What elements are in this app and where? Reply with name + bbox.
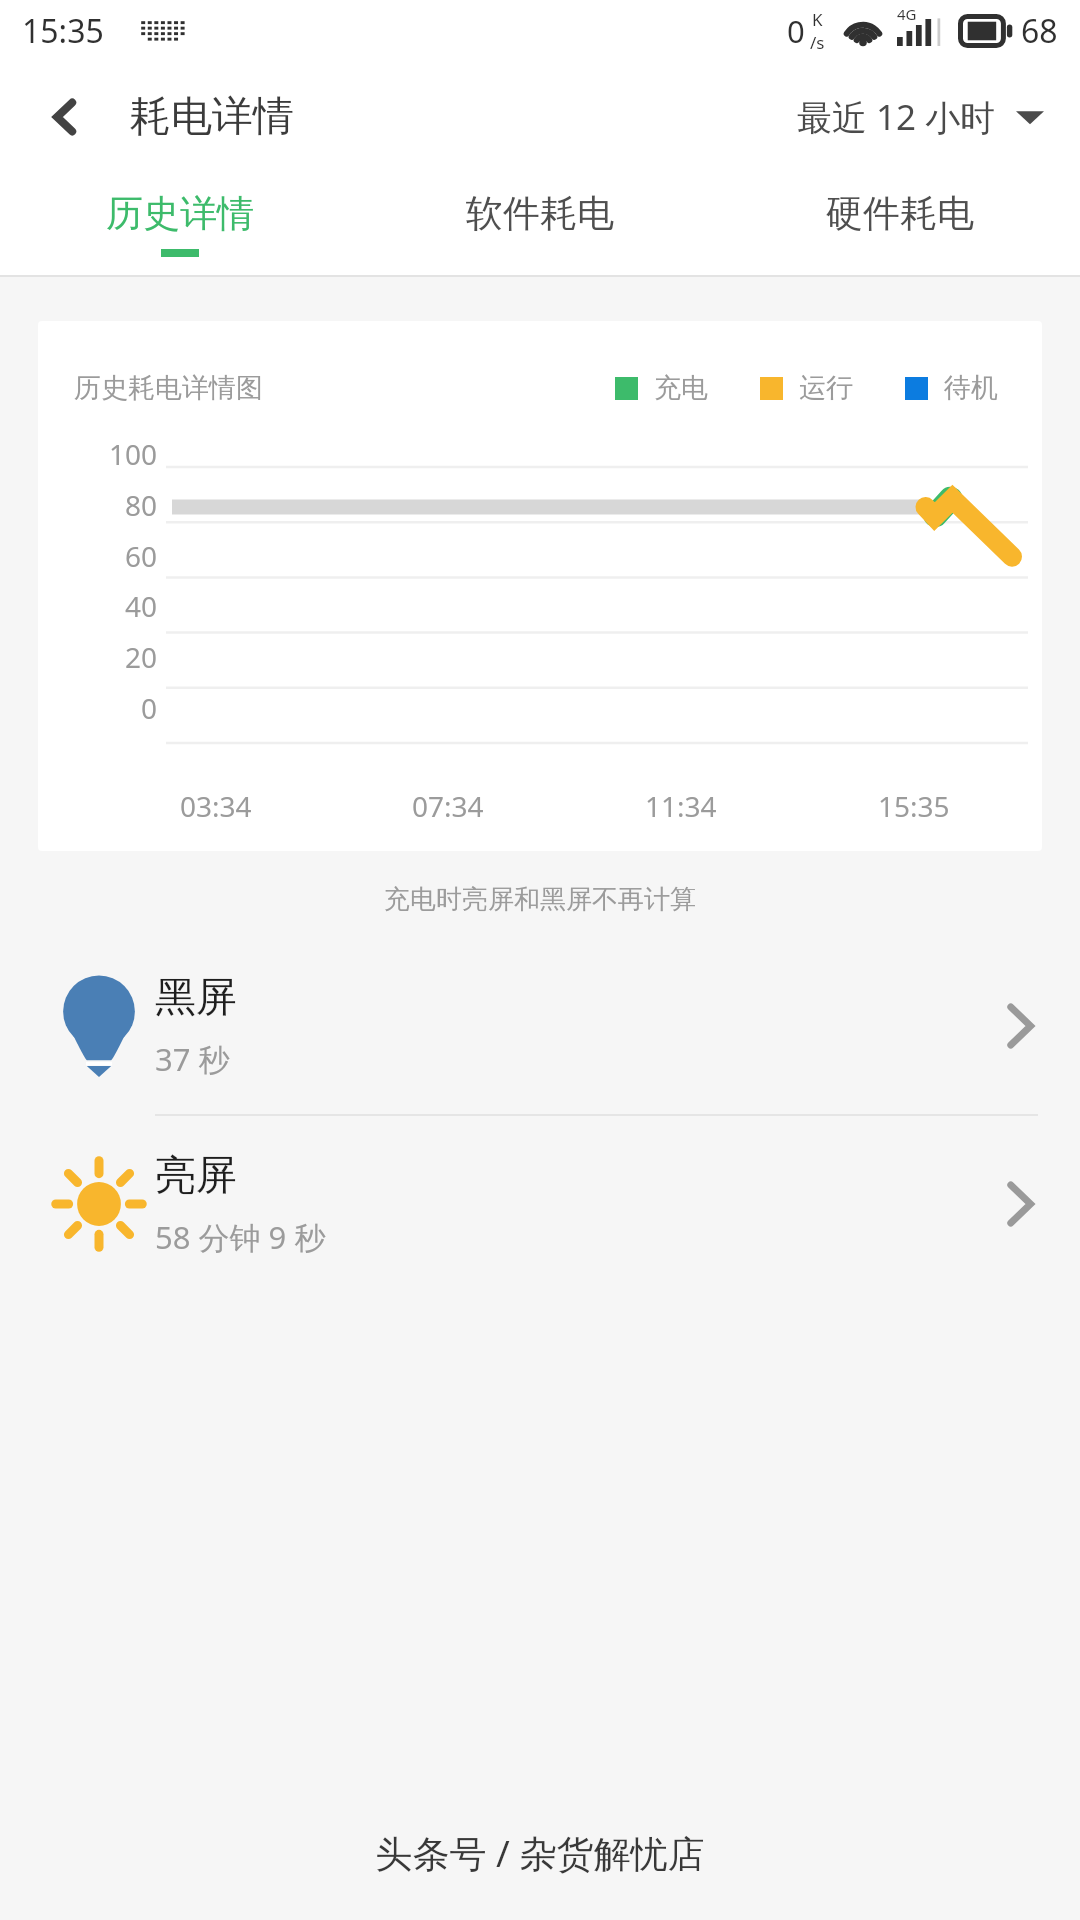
staticText: 03:34 — [180, 787, 252, 825]
staticText: 58 分钟 9 秒 — [155, 1216, 326, 1258]
staticText: 历史详情 — [106, 190, 254, 237]
staticText: 最近 12 小时 — [797, 93, 996, 141]
staticText: 07:34 — [412, 787, 484, 825]
button[interactable]: 亮屏 — [0, 1116, 1080, 1292]
staticText: 4G — [897, 4, 917, 24]
staticText: 80 — [125, 486, 158, 524]
staticText: 37 秒 — [155, 1038, 230, 1080]
staticText: 15:35 — [22, 9, 104, 53]
staticText: /s — [810, 31, 825, 54]
staticText: K — [812, 8, 823, 31]
staticText: 充电时亮屏和黑屏不再计算 — [0, 883, 1080, 916]
staticText: 黑屏 — [155, 972, 237, 1024]
staticText: 软件耗电 — [466, 190, 614, 237]
button[interactable]: 最近 12 小时 — [797, 83, 1044, 151]
button[interactable]: 黑屏 — [0, 938, 1080, 1114]
staticText: 耗电详情 — [130, 91, 294, 143]
button[interactable]: Back — [34, 86, 96, 148]
staticText: 0 — [787, 10, 805, 52]
staticText: 待机 — [944, 371, 998, 405]
staticText: 0 — [141, 689, 158, 727]
staticText: 15:35 — [878, 787, 950, 825]
staticText: 头条号 / 杂货解忧店 — [0, 1827, 1080, 1878]
staticText: 硬件耗电 — [826, 190, 974, 237]
staticText: 充电 — [654, 371, 708, 405]
staticText: 100 — [109, 435, 158, 473]
staticText: 运行 — [799, 371, 853, 405]
staticText: 40 — [125, 587, 158, 625]
button[interactable]: 历史详情 — [0, 172, 360, 275]
button[interactable]: 硬件耗电 — [720, 172, 1080, 275]
staticText: 历史耗电详情图 — [74, 371, 263, 405]
staticText: 亮屏 — [155, 1150, 237, 1202]
staticText: 68 — [1021, 9, 1058, 53]
button[interactable]: 软件耗电 — [360, 172, 720, 275]
staticText: 11:34 — [645, 787, 717, 825]
staticText: 20 — [125, 638, 158, 676]
staticText: 60 — [125, 537, 158, 575]
